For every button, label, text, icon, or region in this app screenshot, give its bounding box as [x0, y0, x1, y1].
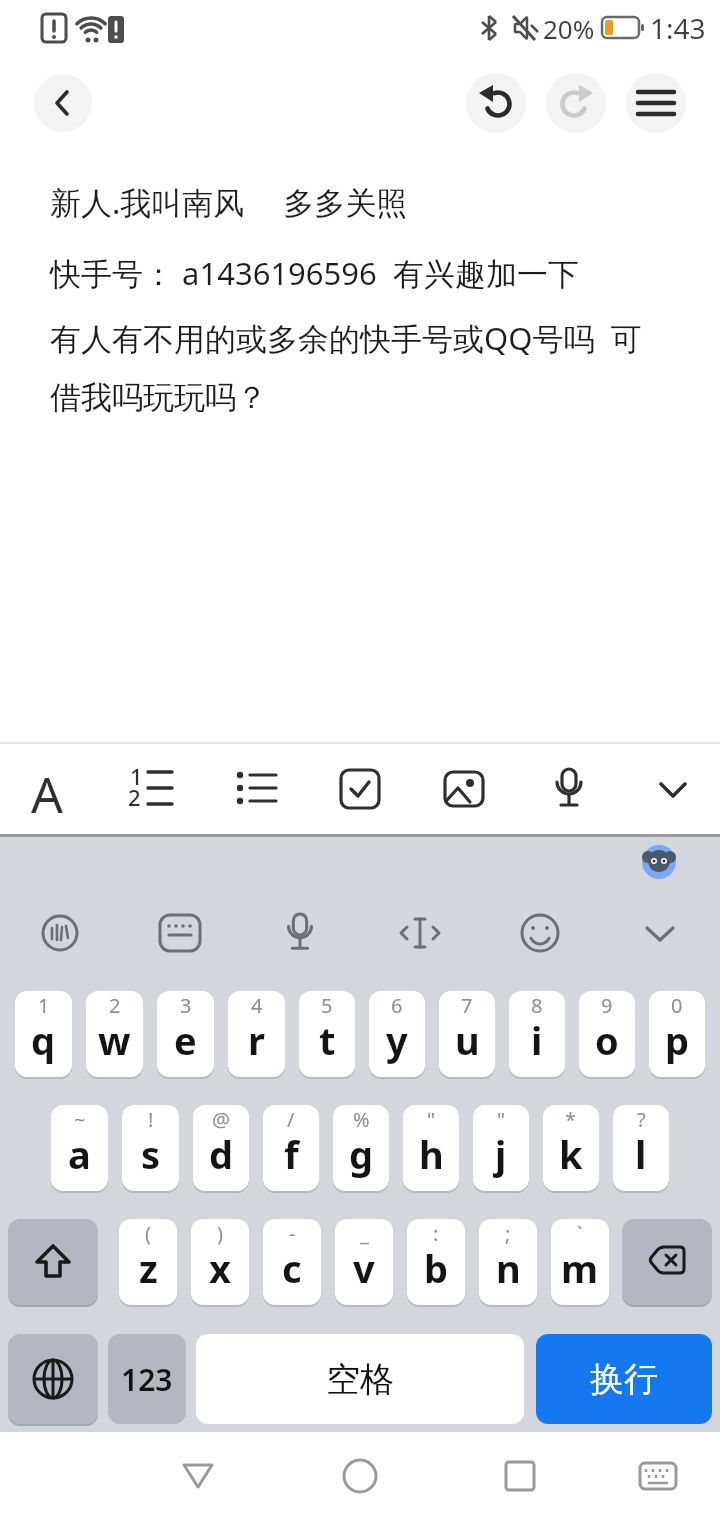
button[interactable]: 123 [108, 1334, 186, 1424]
button[interactable]: 1 [122, 760, 180, 818]
staticText: ( [145, 1220, 151, 1247]
staticText: ~ [74, 1106, 86, 1133]
staticText: - [289, 1220, 296, 1247]
button[interactable]: ) [191, 1219, 249, 1305]
staticText: 2 [128, 782, 141, 812]
staticText: o [595, 1014, 619, 1066]
staticText: h [419, 1128, 444, 1180]
staticText: p [665, 1014, 690, 1066]
staticText: q [31, 1014, 56, 1066]
staticText: 2 [109, 992, 121, 1019]
staticText: 20% [543, 11, 595, 46]
staticText: ; [505, 1220, 511, 1247]
button[interactable]: " [403, 1105, 459, 1191]
staticText: 8 [531, 992, 543, 1019]
staticText: 1 [38, 992, 50, 1019]
staticText: l [635, 1128, 647, 1180]
staticText: 有人有不用的或多余的快手号或QQ号吗 可 借我吗玩玩吗？ [50, 317, 642, 417]
button[interactable]: 6 [369, 991, 425, 1077]
staticText: t [319, 1014, 336, 1066]
button[interactable] [466, 73, 526, 133]
staticText: 3 [180, 992, 192, 1019]
staticText: f [284, 1128, 299, 1180]
button[interactable] [330, 1446, 390, 1506]
button[interactable] [150, 903, 210, 963]
button[interactable]: ` [551, 1219, 609, 1305]
staticText: g [349, 1128, 374, 1180]
staticText: r [248, 1014, 265, 1066]
button[interactable] [644, 760, 702, 818]
button[interactable] [626, 73, 686, 133]
button[interactable] [34, 74, 92, 132]
staticText: m [561, 1242, 599, 1294]
staticText: v [353, 1242, 375, 1294]
staticText: 空格 [326, 1358, 394, 1401]
button[interactable]: ( [119, 1219, 177, 1305]
button[interactable] [628, 1446, 688, 1506]
button[interactable]: 4 [228, 991, 285, 1077]
button[interactable]: 2 [86, 991, 143, 1077]
staticText: 4 [251, 992, 263, 1019]
button[interactable] [546, 73, 606, 133]
button[interactable]: 空格 [196, 1334, 524, 1424]
button[interactable]: A [18, 760, 76, 818]
button[interactable] [8, 1219, 98, 1305]
staticText: x [209, 1242, 231, 1294]
button[interactable]: @ [193, 1105, 249, 1191]
staticText: y [386, 1014, 408, 1066]
button[interactable]: : [407, 1219, 465, 1305]
button[interactable]: 3 [157, 991, 214, 1077]
button[interactable] [227, 760, 285, 818]
staticText: 123 [121, 1359, 173, 1400]
button[interactable]: % [333, 1105, 389, 1191]
staticText: @ [212, 1106, 230, 1133]
button[interactable]: ; [479, 1219, 537, 1305]
staticText: 6 [391, 992, 403, 1019]
button[interactable]: ~ [51, 1105, 108, 1191]
button[interactable] [540, 760, 598, 818]
staticText: ? [637, 1106, 646, 1133]
button[interactable]: 5 [299, 991, 355, 1077]
button[interactable]: 9 [579, 991, 635, 1077]
staticText: ) [217, 1220, 223, 1247]
staticText: u [455, 1014, 480, 1066]
staticText: z [139, 1242, 158, 1294]
button[interactable]: 0 [649, 991, 705, 1077]
staticText: 新人.我叫南风 多多关照 [50, 181, 408, 223]
button[interactable] [622, 1219, 712, 1305]
button[interactable]: - [263, 1219, 321, 1305]
button[interactable] [270, 903, 330, 963]
button[interactable]: _ [335, 1219, 393, 1305]
button[interactable]: * [543, 1105, 599, 1191]
button[interactable] [8, 1334, 98, 1424]
button[interactable] [510, 903, 570, 963]
button[interactable]: ? [613, 1105, 669, 1191]
staticText: a [68, 1128, 91, 1180]
button[interactable] [435, 760, 493, 818]
staticText: 换行 [590, 1358, 658, 1401]
staticText: i [531, 1014, 543, 1066]
staticText: " [497, 1106, 506, 1133]
staticText: 9 [601, 992, 613, 1019]
staticText: A [31, 760, 63, 818]
staticText: j [495, 1128, 507, 1180]
button[interactable]: / [263, 1105, 319, 1191]
button[interactable]: ! [122, 1105, 179, 1191]
button[interactable] [490, 1446, 550, 1506]
staticText: : [433, 1220, 439, 1247]
button[interactable]: 7 [439, 991, 495, 1077]
button[interactable] [168, 1446, 228, 1506]
staticText: 1 [130, 761, 143, 791]
staticText: ! [148, 1106, 154, 1133]
staticText: 7 [461, 992, 473, 1019]
button[interactable]: " [473, 1105, 529, 1191]
button[interactable]: 1 [15, 991, 72, 1077]
staticText: 5 [321, 992, 333, 1019]
button[interactable] [390, 903, 450, 963]
button[interactable] [630, 903, 690, 963]
button[interactable]: 换行 [536, 1334, 712, 1424]
staticText: % [353, 1106, 370, 1133]
button[interactable]: 8 [509, 991, 565, 1077]
button[interactable] [331, 760, 389, 818]
button[interactable] [30, 903, 90, 963]
